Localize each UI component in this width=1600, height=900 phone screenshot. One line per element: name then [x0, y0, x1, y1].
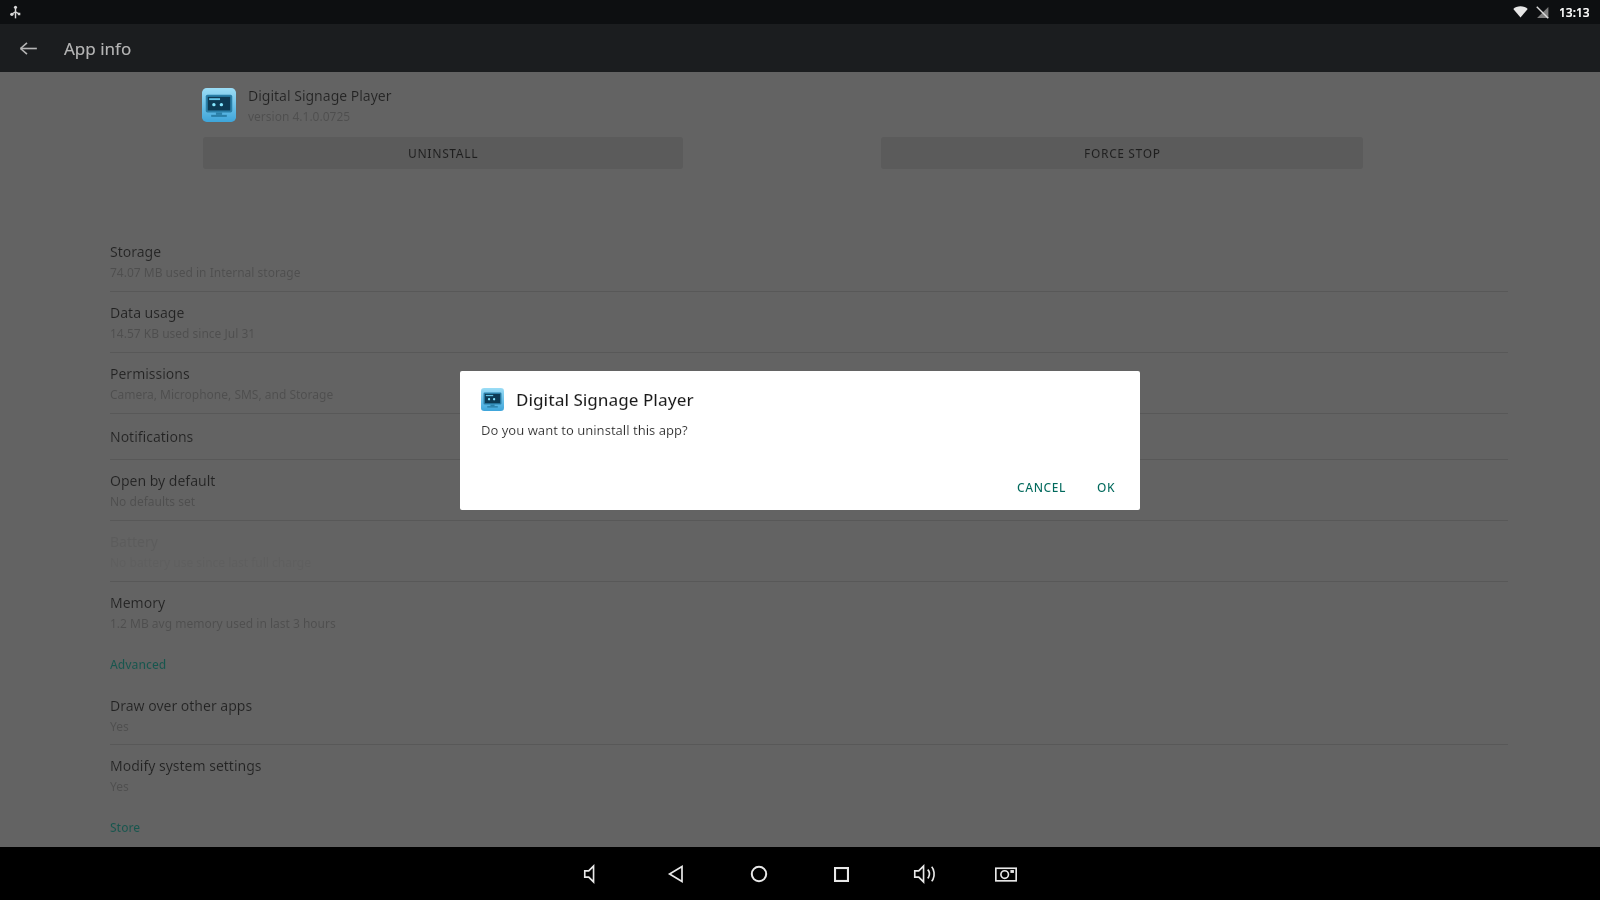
button[interactable]: Notifications [0, 414, 1600, 459]
staticText: Do you want to uninstall this app? [481, 421, 688, 439]
staticText: UNINSTALL [408, 145, 479, 161]
button[interactable]: UNINSTALL [203, 137, 683, 169]
staticText: Camera, Microphone, SMS, and Storage [110, 386, 334, 402]
staticText: Modify system settings [110, 756, 262, 775]
staticText: Advanced [110, 656, 167, 672]
button[interactable]: Screenshot [982, 850, 1030, 898]
staticText: 74.07 MB used in Internal storage [110, 264, 301, 280]
button[interactable]: FORCE STOP [881, 137, 1363, 169]
staticText: Notifications [110, 427, 194, 446]
staticText: Storage [110, 242, 162, 261]
button[interactable]: Recent apps [817, 850, 865, 898]
staticText: Open by default [110, 471, 216, 490]
staticText: Yes [110, 778, 129, 794]
staticText: Permissions [110, 364, 190, 383]
staticText: Digital Signage Player [516, 388, 694, 411]
button[interactable]: Permissions [0, 353, 1600, 413]
staticText: 14.57 KB used since Jul 31 [110, 325, 256, 341]
button[interactable]: Volume up [900, 850, 948, 898]
staticText: 13:13 [1559, 4, 1590, 20]
staticText: 1.2 MB avg memory used in last 3 hours [110, 615, 336, 631]
staticText: FORCE STOP [1084, 145, 1161, 161]
button[interactable]: Back [652, 850, 700, 898]
staticText: version 4.1.0.0725 [248, 108, 351, 124]
staticText: Draw over other apps [110, 696, 253, 715]
staticText: Store [110, 819, 141, 835]
staticText: CANCEL [1017, 479, 1067, 495]
staticText: No defaults set [110, 493, 196, 509]
button[interactable]: OK [1089, 473, 1124, 501]
staticText: Data usage [110, 303, 185, 322]
staticText: Yes [110, 718, 129, 734]
button[interactable]: Draw over other apps [0, 686, 1600, 744]
button[interactable]: CANCEL [1009, 473, 1075, 501]
button[interactable]: Open by default [0, 460, 1600, 520]
staticText: Digital Signage Player [248, 86, 392, 105]
button[interactable]: Volume down [570, 850, 618, 898]
staticText: Memory [110, 593, 166, 612]
button[interactable]: Back [4, 24, 52, 72]
staticText: OK [1097, 479, 1116, 495]
button[interactable]: Modify system settings [0, 745, 1600, 805]
staticText: App info [64, 37, 132, 60]
button[interactable]: Home [735, 850, 783, 898]
